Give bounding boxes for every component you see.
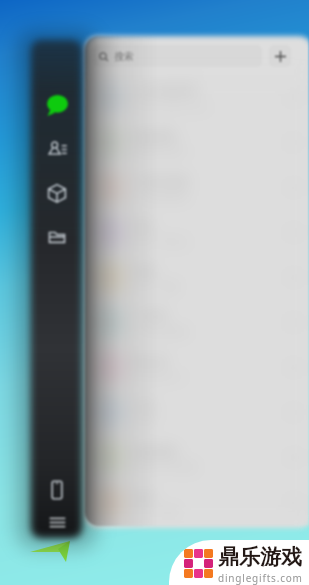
staticText: dinglegifts.com (218, 571, 303, 585)
button[interactable]: 订阅号消息 (85, 165, 309, 210)
button[interactable]: Files (42, 222, 72, 252)
staticText: 工作群 (134, 308, 167, 322)
staticText: 李四 (134, 264, 156, 278)
button[interactable]: Menu (42, 507, 72, 537)
button[interactable]: 搜索 (93, 45, 262, 67)
staticText: 鼎乐游戏 (218, 544, 302, 570)
button[interactable]: Contacts (42, 134, 72, 164)
staticText: 张三 (134, 219, 156, 233)
staticText: 搜索 (114, 50, 134, 63)
button[interactable]: 工作群 (85, 300, 309, 345)
button[interactable]: 张三 (85, 210, 309, 255)
button[interactable]: Chats (42, 90, 72, 120)
staticText: [10条] 群消息 (134, 325, 189, 337)
staticText: 王五 (134, 399, 156, 413)
staticText: 微信安全提示 (134, 146, 188, 157)
button[interactable]: 王五 (85, 390, 309, 435)
staticText: 在吗？ (134, 416, 161, 427)
button[interactable]: 赵六 (85, 480, 309, 525)
staticText: 家人群 (134, 354, 167, 368)
button[interactable]: Add (269, 45, 291, 67)
staticText: 今日推荐阅读 (134, 191, 188, 202)
button[interactable]: 家人群 (85, 345, 309, 390)
staticText: 微信团队 (134, 129, 178, 143)
staticText: 订阅号消息 (134, 174, 189, 188)
staticText: 收到，谢谢 (134, 281, 179, 292)
button[interactable]: 服务通知 (85, 435, 309, 480)
button[interactable]: Phone (42, 475, 72, 505)
staticText: 周末一起吧 (134, 506, 179, 517)
staticText: [文件] report.docx (134, 100, 210, 112)
staticText: 服务通知 (134, 444, 178, 458)
staticText: 好的，明天见 (134, 236, 188, 247)
button[interactable]: 文件传输助手 (85, 75, 309, 120)
button[interactable]: 李四 (85, 255, 309, 300)
staticText: 您的订单已发货 (134, 461, 197, 472)
staticText: 赵六 (134, 489, 156, 503)
staticText: 晚上吃什么？ (134, 371, 188, 382)
button[interactable]: Discover (42, 178, 72, 208)
button[interactable]: 微信团队 (85, 120, 309, 165)
